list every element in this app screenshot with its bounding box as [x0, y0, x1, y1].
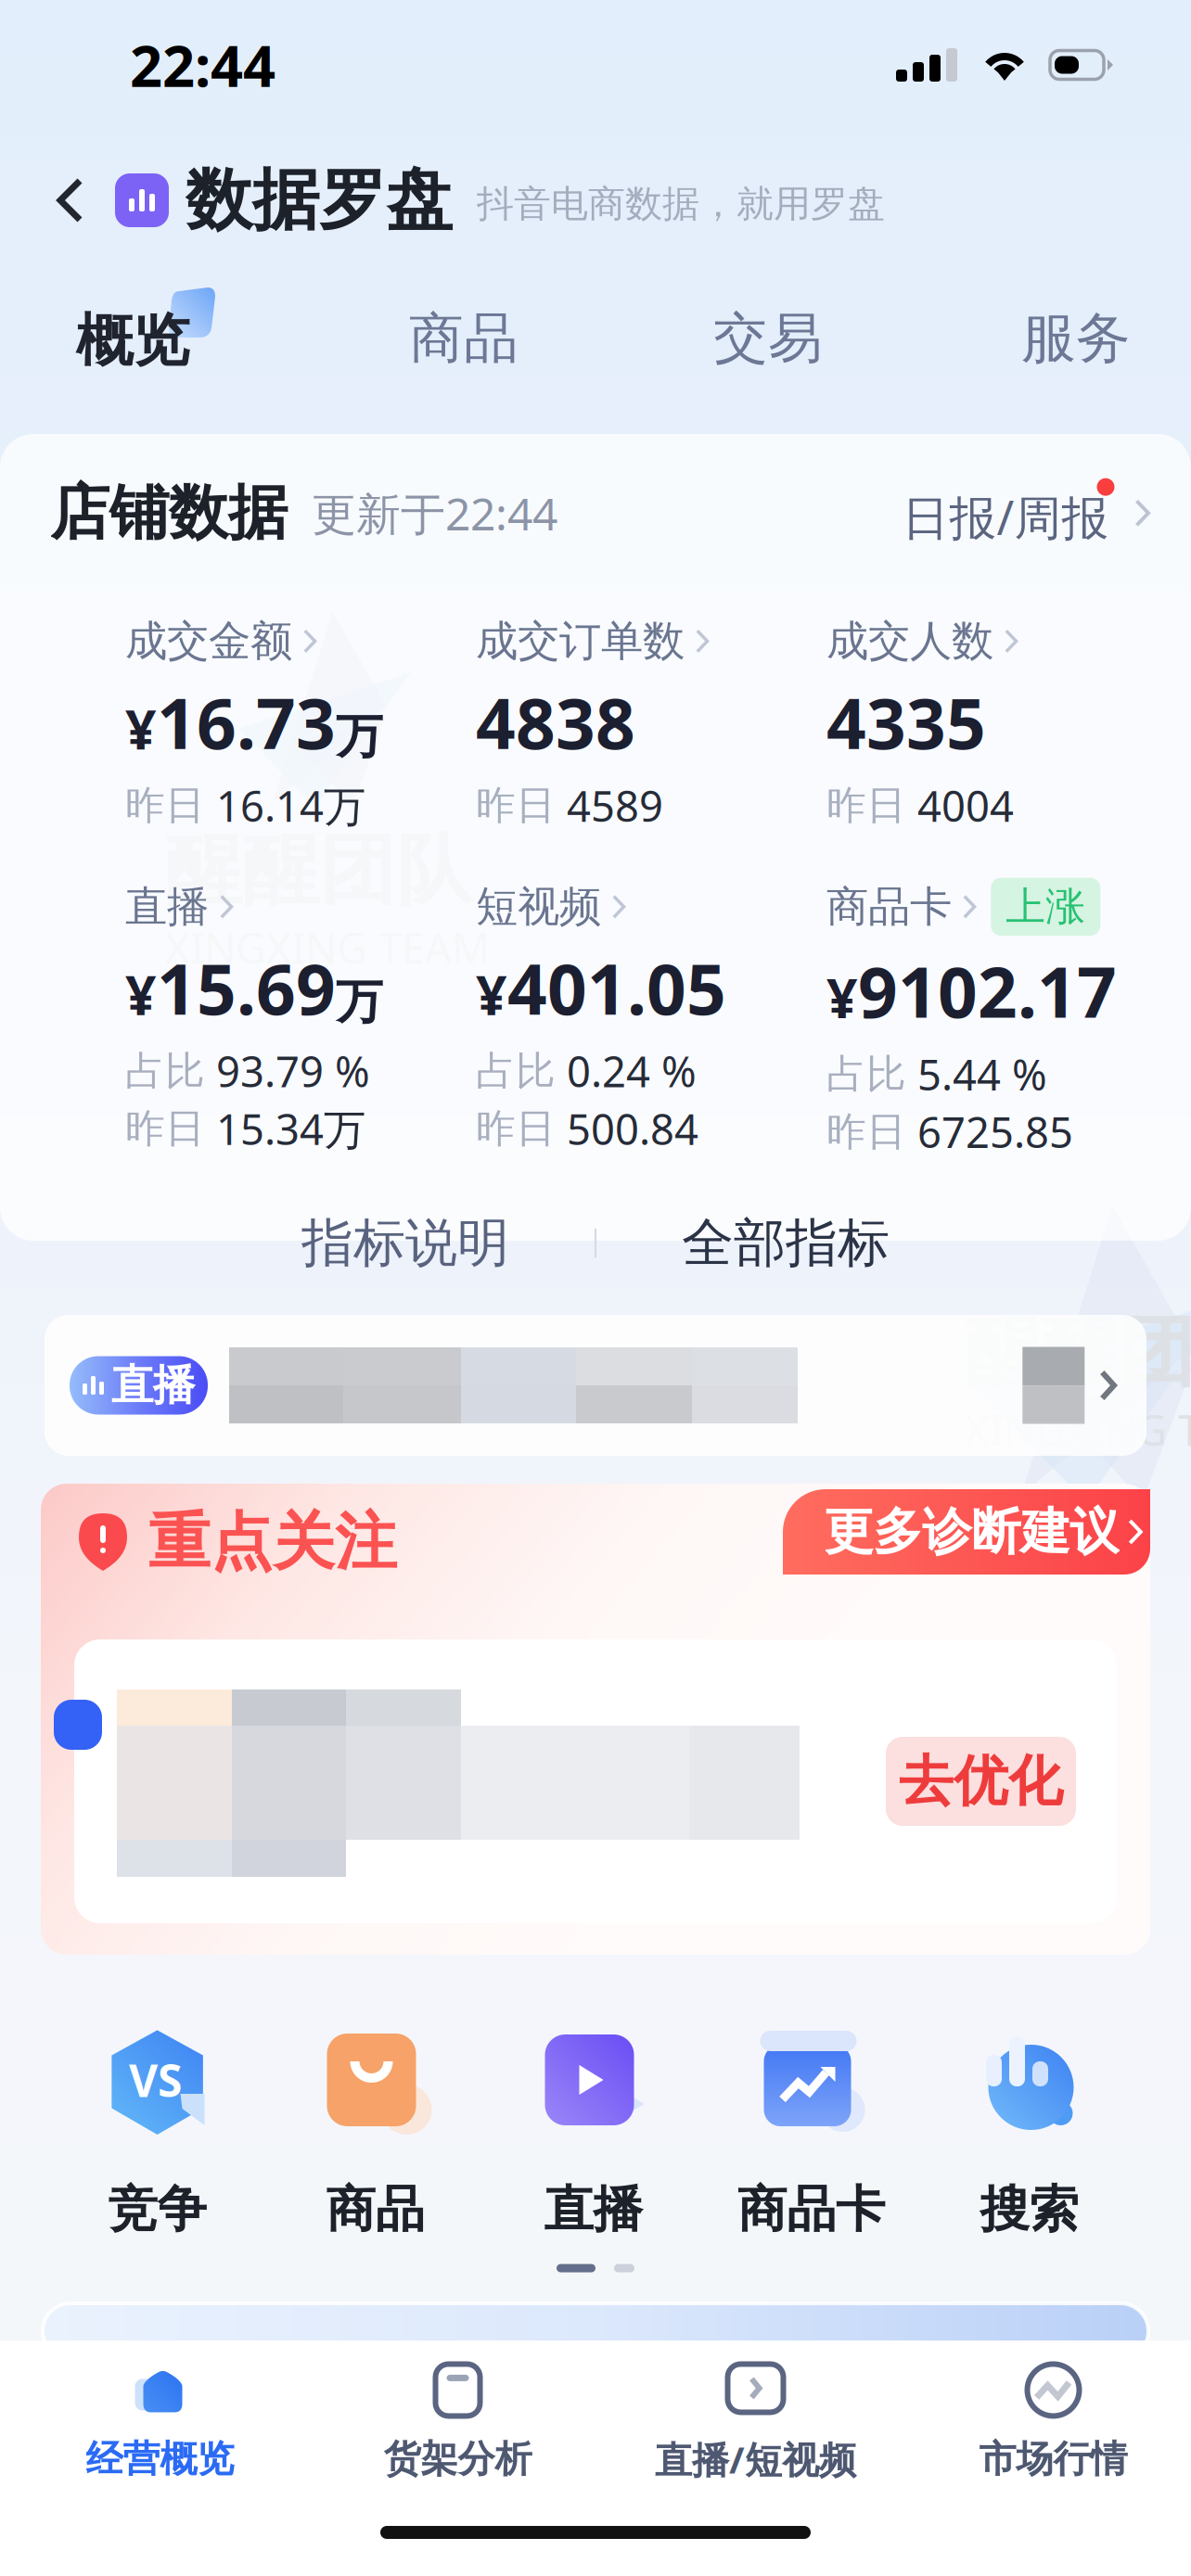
button[interactable]: 商品	[266, 2027, 484, 2240]
staticText: 成交金额	[125, 615, 292, 667]
staticText: XINGXING TEAM	[165, 919, 490, 975]
staticText: 500.84	[567, 1101, 698, 1157]
button[interactable]: 成交人数	[826, 615, 1151, 833]
staticText: 成交订单数	[476, 615, 685, 667]
staticText: 商品卡	[826, 881, 952, 933]
staticText: 4335	[826, 676, 986, 768]
staticText: 昨日	[826, 781, 906, 830]
staticText: 直播	[544, 2179, 642, 2240]
staticText: ¥	[826, 961, 858, 1033]
staticText: 占比	[826, 1050, 906, 1098]
staticText: 22:44	[130, 27, 275, 103]
staticText: 抖音电商数据，就用罗盘	[477, 181, 885, 227]
staticText: 9102.17	[858, 945, 1117, 1037]
button[interactable]: 直播	[484, 2027, 702, 2240]
staticText: 6725.85	[917, 1104, 1073, 1160]
staticText: 4838	[476, 676, 635, 768]
staticText: 昨日	[476, 1104, 556, 1153]
button[interactable]: 全部指标	[682, 1215, 890, 1271]
button[interactable]: 货架分析	[309, 2340, 607, 2504]
staticText: 醒醒团队	[165, 823, 473, 918]
button[interactable]: 概览	[76, 287, 308, 376]
button[interactable]: 更多诊断建议	[783, 1486, 1150, 1578]
button[interactable]: 去优化	[886, 1737, 1076, 1826]
staticText: 更新于22:44	[312, 483, 557, 543]
staticText: 直播	[111, 1360, 195, 1411]
staticText: 经营概览	[86, 2436, 234, 2482]
staticText: 数据罗盘	[186, 159, 453, 241]
button[interactable]: 直播/短视频	[607, 2340, 904, 2504]
staticText: 醒醒团队	[965, 1306, 1191, 1400]
button[interactable]: 商品卡	[826, 878, 1151, 1160]
staticText: 15.69	[157, 942, 336, 1034]
staticText: ¥	[125, 692, 157, 764]
button[interactable]: 短视频	[476, 881, 826, 1157]
staticText: 4589	[567, 777, 663, 833]
staticText: 昨日	[476, 781, 556, 830]
staticText: 商品	[409, 305, 519, 372]
staticText: 93.79 %	[216, 1043, 370, 1099]
staticText: 服务	[1021, 305, 1131, 372]
staticText: 占比	[476, 1047, 556, 1095]
staticText: 昨日	[125, 1104, 205, 1153]
staticText: 去优化	[899, 1748, 1063, 1815]
button[interactable]: 经营概览	[11, 2340, 309, 2504]
staticText: 全部指标	[682, 1211, 890, 1275]
staticText: 短视频	[476, 881, 601, 933]
button[interactable]: 成交订单数	[476, 615, 826, 833]
staticText: 16.73	[157, 676, 336, 768]
staticText: 15.34万	[216, 1101, 365, 1157]
staticText: 上涨	[1006, 882, 1086, 931]
staticText: 搜索	[980, 2179, 1078, 2240]
staticText: XINGXING TEAM	[965, 1402, 1191, 1457]
staticText: ¥	[476, 958, 507, 1030]
staticText: 万	[336, 973, 383, 1031]
staticText: 指标说明	[301, 1211, 509, 1275]
button[interactable]: 返回	[26, 156, 115, 245]
staticText: 市场行情	[979, 2436, 1127, 2482]
button[interactable]: 交易	[703, 281, 833, 383]
staticText: 竞争	[108, 2179, 206, 2240]
staticText: 商品	[326, 2179, 424, 2240]
button[interactable]: 服务	[1011, 281, 1141, 383]
staticText: 概览	[76, 306, 189, 376]
staticText: 重点关注	[148, 1504, 397, 1580]
staticText: ¥	[125, 958, 157, 1030]
staticText: 成交人数	[826, 615, 993, 667]
button[interactable]: 市场行情	[904, 2340, 1191, 2504]
button[interactable]: 商品卡	[702, 2027, 920, 2240]
staticText: 401.05	[507, 942, 726, 1034]
staticText: 0.24 %	[567, 1043, 697, 1099]
staticText: 占比	[125, 1047, 205, 1095]
staticText: 直播/短视频	[655, 2434, 856, 2484]
staticText: 5.44 %	[917, 1046, 1047, 1102]
staticText: 店铺数据	[50, 477, 288, 550]
button[interactable]: 成交金额	[125, 615, 476, 833]
staticText: VS	[129, 2050, 182, 2109]
staticText: 直播	[125, 881, 209, 933]
staticText: 万	[336, 708, 383, 765]
button[interactable]: 直播	[45, 1315, 1146, 1456]
staticText: 4004	[917, 777, 1014, 833]
staticText: 交易	[713, 305, 823, 372]
button[interactable]: 搜索	[920, 2027, 1138, 2240]
button[interactable]: 指标说明	[301, 1215, 509, 1271]
button[interactable]: 商品	[399, 281, 529, 383]
staticText: 更多诊断建议	[824, 1501, 1119, 1562]
staticText: 昨日	[826, 1107, 906, 1156]
staticText: 日报/周报	[902, 486, 1109, 548]
staticText: 商品卡	[737, 2179, 885, 2240]
staticText: 货架分析	[384, 2436, 532, 2482]
button[interactable]: 日报/周报	[902, 478, 1150, 548]
button[interactable]: VS	[48, 2027, 266, 2240]
staticText: 昨日	[125, 781, 205, 830]
button[interactable]: 直播	[125, 881, 476, 1157]
staticText: 16.14万	[216, 777, 365, 833]
